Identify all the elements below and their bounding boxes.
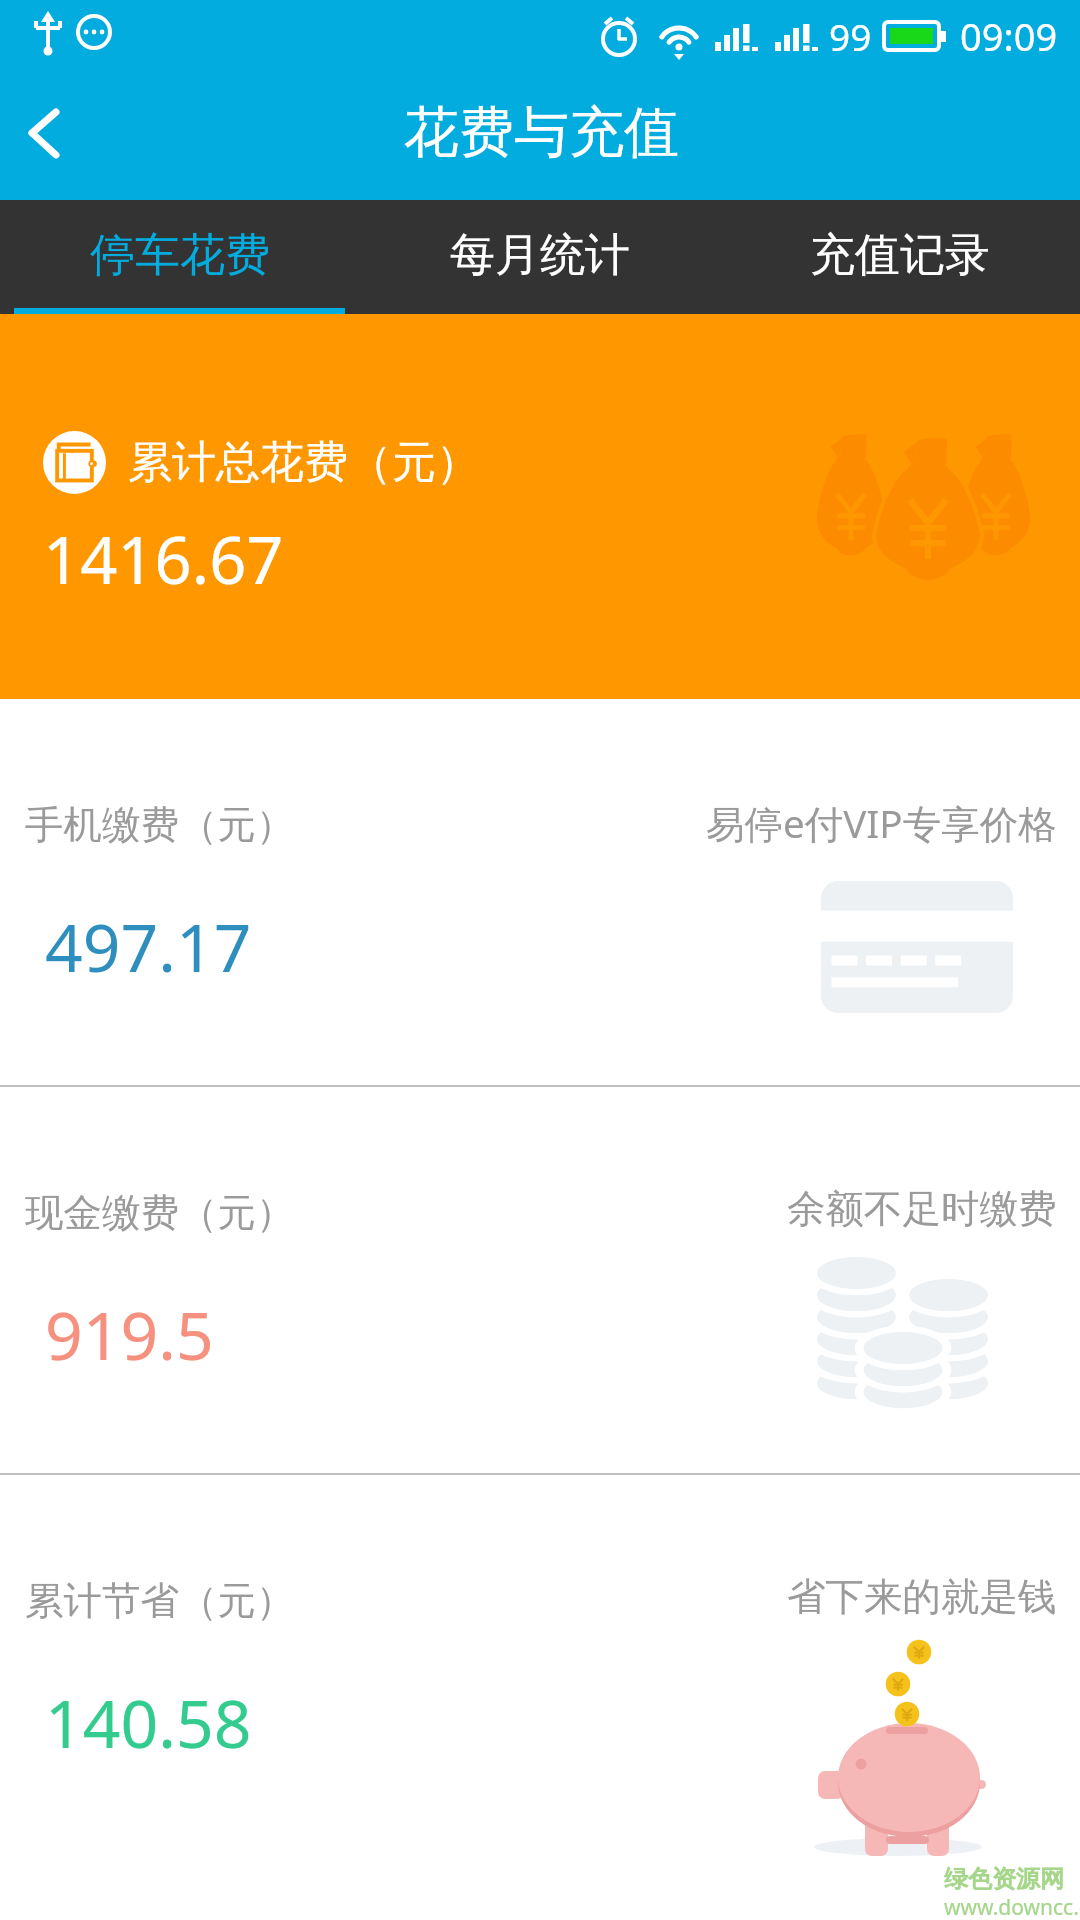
button[interactable]: 现金缴费（元）: [0, 1087, 1080, 1473]
staticText: 绿色资源网: [944, 1864, 1064, 1894]
staticText: 省下来的就是钱: [787, 1573, 1057, 1622]
staticText: 停车花费: [90, 227, 270, 284]
staticText: 919.5: [45, 1289, 214, 1379]
staticText: 充值记录: [810, 227, 990, 284]
staticText: 1416.67: [43, 515, 284, 604]
staticText: 现金缴费（元）: [25, 1189, 295, 1238]
staticText: 497.17: [45, 901, 252, 991]
button[interactable]: 累计节省（元）: [0, 1475, 1080, 1861]
staticText: www.downcc.com: [944, 1893, 1080, 1920]
staticText: 09:09: [960, 10, 1058, 62]
staticText: 每月统计: [450, 227, 630, 284]
button[interactable]: Back: [0, 72, 108, 200]
staticText: 累计总花费（元）: [128, 435, 480, 490]
staticText: 手机缴费（元）: [25, 801, 295, 850]
staticText: 99: [829, 11, 872, 61]
button[interactable]: 手机缴费（元）: [0, 699, 1080, 1085]
staticText: 余额不足时缴费: [787, 1185, 1057, 1234]
staticText: 140.58: [45, 1677, 252, 1767]
button[interactable]: 停车花费: [0, 200, 360, 314]
staticText: 累计节省（元）: [25, 1577, 295, 1626]
staticText: 花费与充值: [404, 98, 679, 167]
button[interactable]: 充值记录: [720, 200, 1080, 314]
staticText: 易停e付VIP专享价格: [706, 797, 1057, 850]
button[interactable]: 每月统计: [360, 200, 720, 314]
